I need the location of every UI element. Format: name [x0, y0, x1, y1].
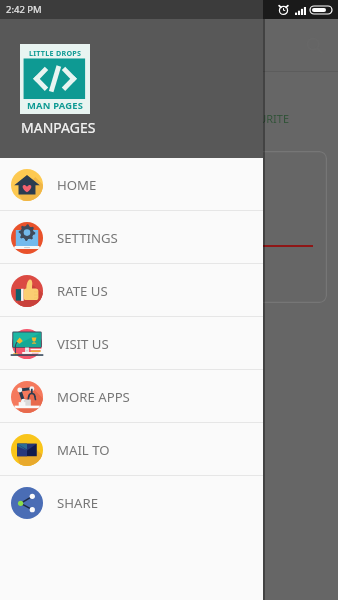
staticText: MAIL TO [57, 441, 110, 459]
staticText: VISIT US [57, 335, 109, 353]
button[interactable]: MAIL TO [0, 423, 263, 476]
button[interactable]: MORE APPS [0, 370, 263, 423]
staticText: LITTLE DROPS [29, 48, 82, 58]
button[interactable]: HOME [0, 158, 263, 211]
staticText: RATE US [57, 282, 108, 300]
button[interactable]: SHARE [0, 476, 263, 529]
button[interactable]: Close navigation drawer [265, 0, 338, 600]
button[interactable]: SETTINGS [0, 211, 263, 264]
button[interactable]: FAVOURITE [208, 72, 312, 151]
staticText: 2:42 PM [6, 3, 42, 16]
staticText: FAVOURITE [231, 111, 290, 126]
staticText: SETTINGS [57, 229, 118, 247]
button[interactable]: RATE US [0, 264, 263, 317]
button[interactable]: VISIT US [0, 317, 263, 370]
button[interactable]: Open navigation drawer [0, 21, 48, 69]
staticText: SHARE [57, 494, 98, 512]
staticText: MANPAGES [21, 118, 96, 137]
button[interactable] [16, 151, 327, 303]
button[interactable]: ALL [0, 72, 104, 151]
staticText: Man Pages [48, 34, 131, 56]
staticText: HOME [57, 176, 97, 194]
staticText: ALL [43, 111, 62, 126]
staticText: MORE APPS [57, 388, 130, 406]
staticText: MAN PAGES [27, 99, 84, 112]
